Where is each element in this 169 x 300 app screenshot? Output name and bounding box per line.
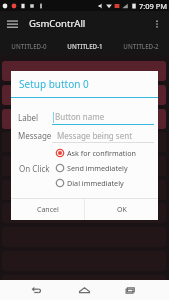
button[interactable]: Cancel [11,199,84,220]
staticText: UNTITLED-0 [11,42,47,50]
staticText: OK [117,205,127,215]
staticText: Setup button 0 [19,77,89,91]
button[interactable]: Ask for confirmation [55,146,136,160]
button[interactable] [2,275,166,295]
button[interactable] [2,85,166,105]
button[interactable]: Send immediately [55,161,128,175]
button[interactable] [2,132,166,152]
staticText: Message being sent [57,130,133,141]
staticText: Dial immediately [67,178,124,188]
staticText: Label [18,112,39,123]
staticText: On Click [19,163,50,174]
staticText: UNTITLED-2 [123,42,159,50]
staticText: Message [18,130,52,141]
button[interactable]: UNTITLED-2 [113,36,169,55]
button[interactable] [2,156,166,176]
button[interactable]: UNTITLED-0 [0,36,57,55]
staticText: UNTITLED-1 [67,42,103,50]
staticText: Send immediately [67,163,128,173]
staticText: Button name [55,111,105,122]
button[interactable]: UNTITLED-1 [57,36,113,55]
staticText: GsmContrAll [29,17,86,30]
button[interactable] [2,180,166,200]
staticText: Cancel [37,205,59,215]
staticText: Ask for confirmation [67,148,136,158]
button[interactable]: Home [73,280,95,300]
button[interactable]: Recent apps [119,280,141,300]
button[interactable] [2,109,166,129]
button[interactable]: OK [85,199,158,220]
button[interactable] [2,61,166,81]
button[interactable] [2,203,166,223]
button[interactable]: Dial immediately [55,176,124,190]
button[interactable]: More options [144,11,169,36]
button[interactable]: Back [25,280,47,300]
button[interactable]: Open navigation drawer [0,11,25,36]
staticText: 7:09 PM [139,1,168,11]
